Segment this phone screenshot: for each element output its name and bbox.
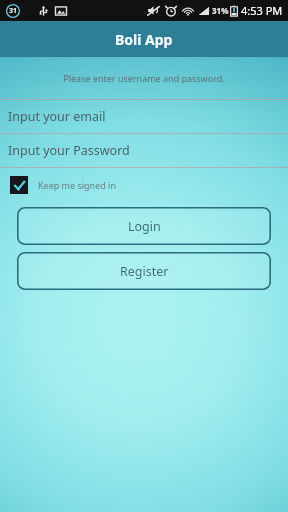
staticText: 31: [9, 6, 18, 16]
staticText: 4:53 PM: [241, 3, 283, 18]
button[interactable]: Login: [17, 207, 271, 245]
button[interactable]: Input your email: [0, 100, 288, 133]
staticText: Input your Password: [8, 142, 130, 159]
staticText: Login: [128, 218, 161, 235]
staticText: 31%: [212, 5, 229, 16]
button[interactable]: Register: [17, 252, 271, 290]
staticText: Input your email: [8, 108, 106, 125]
staticText: Boli App: [115, 30, 173, 49]
staticText: Please enter username and password.: [63, 72, 225, 84]
staticText: Register: [120, 263, 169, 280]
button[interactable]: Input your Password: [0, 134, 288, 167]
button[interactable]: Keep me signed in: [0, 168, 288, 202]
staticText: Keep me signed in: [38, 179, 116, 191]
